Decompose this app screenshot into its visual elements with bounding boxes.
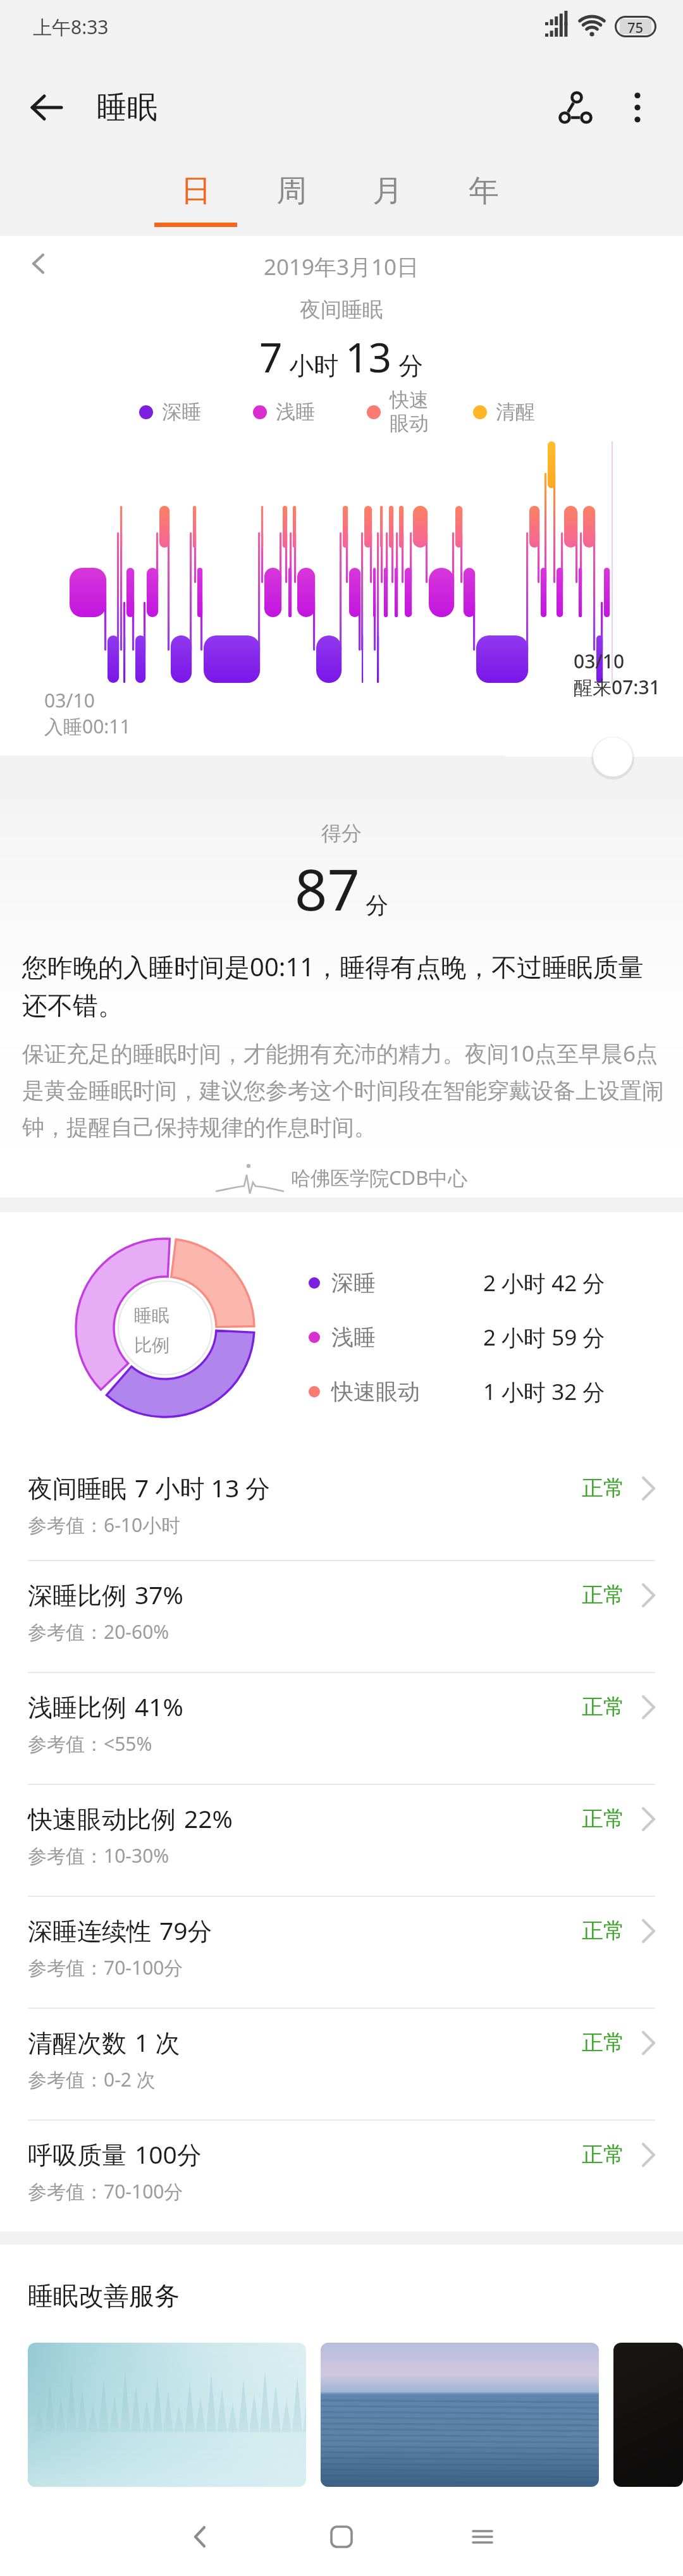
staticText: 03/10 bbox=[44, 687, 95, 713]
button[interactable]: 夜间睡眠 bbox=[0, 1454, 683, 1560]
button[interactable]: Back bbox=[16, 77, 77, 138]
staticText: 深睡 bbox=[331, 1269, 376, 1297]
staticText: 清醒 bbox=[496, 400, 535, 424]
button[interactable]: More options bbox=[607, 77, 668, 138]
staticText: 7 小时 13 分 bbox=[135, 1471, 271, 1504]
staticText: 22% bbox=[184, 1801, 233, 1835]
staticText: 分 bbox=[360, 889, 389, 920]
button[interactable] bbox=[28, 2343, 306, 2487]
staticText: 分 bbox=[392, 348, 424, 381]
staticText: 参考值：10-30% bbox=[28, 1843, 169, 1868]
staticText: 正常 bbox=[582, 1693, 625, 1720]
staticText: 深睡 bbox=[162, 400, 201, 424]
staticText: 1 次 bbox=[135, 2025, 180, 2059]
staticText: 参考值：6-10小时 bbox=[28, 1512, 181, 1538]
button[interactable]: 浅睡比例 bbox=[0, 1673, 683, 1784]
button[interactable]: Previous day bbox=[16, 241, 62, 286]
staticText: 正常 bbox=[582, 1581, 625, 1609]
staticText: 79分 bbox=[159, 1913, 212, 1947]
staticText: 浅睡比例 bbox=[28, 1692, 126, 1723]
button[interactable]: Share bbox=[544, 76, 607, 139]
button[interactable] bbox=[613, 2343, 683, 2487]
staticText: 夜间睡眠 bbox=[300, 297, 383, 323]
staticText: 睡眠 bbox=[134, 1304, 169, 1327]
staticText: 月 bbox=[372, 172, 403, 210]
staticText: 7 bbox=[259, 329, 283, 384]
staticText: 03/10 bbox=[574, 648, 625, 674]
staticText: 41% bbox=[135, 1690, 184, 1723]
staticText: 哈佛医学院CDB中心 bbox=[291, 1164, 468, 1191]
staticText: 小时 bbox=[283, 348, 345, 381]
staticText: 13 bbox=[345, 329, 392, 384]
staticText: 2019年3月10日 bbox=[264, 252, 419, 282]
staticText: 37% bbox=[135, 1578, 184, 1611]
staticText: 快速眼动比例 bbox=[28, 1804, 176, 1835]
button[interactable]: Back bbox=[172, 2508, 229, 2565]
staticText: 100分 bbox=[135, 2137, 202, 2171]
staticText: 75 bbox=[627, 18, 644, 35]
staticText: 入睡00:11 bbox=[44, 713, 131, 739]
staticText: 正常 bbox=[582, 1917, 625, 1944]
staticText: 正常 bbox=[582, 1475, 625, 1502]
staticText: 日 bbox=[181, 172, 211, 210]
staticText: 2 小时 42 分 bbox=[483, 1268, 605, 1298]
staticText: 睡眠 bbox=[97, 89, 157, 126]
staticText: 周 bbox=[276, 172, 307, 210]
staticText: 保证充足的睡眠时间，才能拥有充沛的精力。夜间10点至早晨6点是黄金睡眠时间，建议… bbox=[22, 1038, 669, 1142]
button[interactable]: 深睡比例 bbox=[0, 1561, 683, 1672]
button[interactable]: Recent apps bbox=[454, 2508, 511, 2565]
staticText: 参考值：70-100分 bbox=[28, 1954, 183, 1980]
staticText: 呼吸质量 bbox=[28, 2140, 126, 2171]
staticText: 参考值：<55% bbox=[28, 1731, 152, 1757]
button[interactable]: 呼吸质量 bbox=[0, 2121, 683, 2231]
button[interactable]: Home bbox=[313, 2508, 370, 2565]
staticText: 1 小时 32 分 bbox=[483, 1377, 605, 1407]
staticText: 年 bbox=[469, 172, 499, 210]
staticText: 上午8:33 bbox=[33, 14, 109, 40]
staticText: 正常 bbox=[582, 1805, 625, 1832]
staticText: 深睡比例 bbox=[28, 1580, 126, 1611]
staticText: 正常 bbox=[582, 2141, 625, 2168]
staticText: 参考值：0-2 次 bbox=[28, 2066, 156, 2092]
staticText: 快速 眼动 bbox=[390, 388, 429, 436]
staticText: 得分 bbox=[321, 821, 362, 846]
staticText: 您昨晚的入睡时间是00:11，睡得有点晚，不过睡眠质量还不错。 bbox=[22, 949, 659, 1022]
staticText: 清醒次数 bbox=[28, 2028, 126, 2059]
button[interactable]: 日 bbox=[147, 162, 243, 236]
staticText: 夜间睡眠 bbox=[28, 1473, 126, 1504]
staticText: 醒来07:31 bbox=[574, 674, 660, 700]
button[interactable]: 周 bbox=[243, 162, 340, 236]
button[interactable]: 年 bbox=[436, 162, 532, 236]
staticText: 比例 bbox=[134, 1334, 169, 1356]
staticText: 正常 bbox=[582, 2029, 625, 2056]
staticText: 睡眠改善服务 bbox=[28, 2280, 180, 2312]
button[interactable]: 清醒次数 bbox=[0, 2009, 683, 2119]
staticText: 87 bbox=[295, 850, 360, 928]
staticText: 快速眼动 bbox=[331, 1378, 420, 1406]
button[interactable] bbox=[321, 2343, 599, 2487]
staticText: 2 小时 59 分 bbox=[483, 1322, 605, 1352]
staticText: 浅睡 bbox=[276, 400, 315, 424]
button[interactable]: 月 bbox=[340, 162, 436, 236]
staticText: 参考值：70-100分 bbox=[28, 2178, 183, 2204]
staticText: 参考值：20-60% bbox=[28, 1619, 169, 1645]
staticText: 浅睡 bbox=[331, 1323, 376, 1351]
button[interactable]: 快速眼动比例 bbox=[0, 1785, 683, 1896]
button[interactable]: 深睡连续性 bbox=[0, 1897, 683, 2008]
staticText: 深睡连续性 bbox=[28, 1916, 151, 1947]
